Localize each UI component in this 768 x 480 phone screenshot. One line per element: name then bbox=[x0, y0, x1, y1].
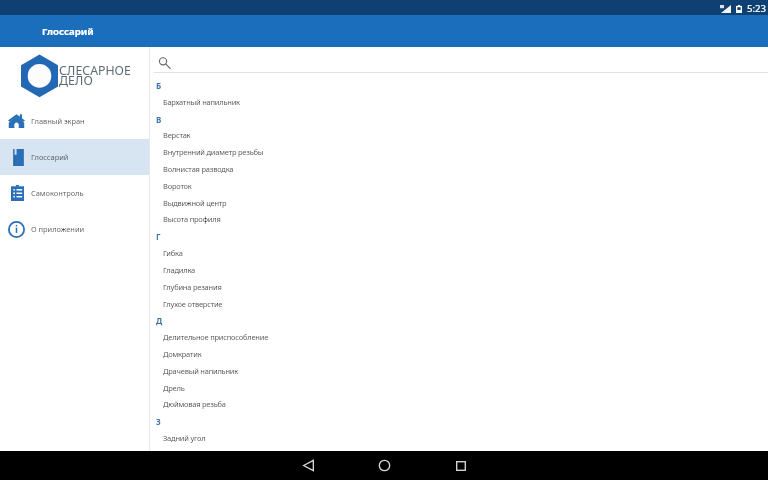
other: Сигнал сети 3G bbox=[720, 5, 731, 13]
button[interactable]: Бархатный напильник bbox=[150, 95, 768, 109]
staticText: Дрель bbox=[163, 383, 185, 393]
staticText: Высота профиля bbox=[163, 214, 221, 224]
button[interactable]: Назад bbox=[292, 451, 324, 480]
staticText: Глоссарий bbox=[42, 25, 94, 38]
staticText: Глубина резания bbox=[163, 282, 222, 292]
button[interactable]: Выдвижной центр bbox=[150, 196, 768, 210]
staticText: Д bbox=[156, 315, 163, 326]
staticText: Выдвижной центр bbox=[163, 198, 227, 208]
staticText: Внутренний диаметр резьбы bbox=[163, 147, 264, 157]
staticText: Верстак bbox=[163, 130, 191, 140]
button[interactable]: Верстак bbox=[150, 128, 768, 142]
button[interactable]: Задний угол bbox=[150, 431, 768, 445]
staticText: Г bbox=[156, 231, 161, 242]
button[interactable]: Поиск bbox=[158, 57, 170, 69]
button[interactable]: Домой bbox=[368, 451, 400, 480]
staticText: Самоконтроль bbox=[31, 188, 84, 198]
staticText: Глухое отверстие bbox=[163, 299, 223, 309]
other: Главный экран bbox=[8, 114, 25, 128]
button[interactable]: О приложении bbox=[0, 211, 149, 247]
button[interactable]: Глоссарий bbox=[0, 139, 149, 175]
staticText: Волнистая разводка bbox=[163, 164, 234, 174]
button[interactable]: Драчевый напильник bbox=[150, 364, 768, 378]
button[interactable]: Внутренний диаметр резьбы bbox=[150, 145, 768, 159]
staticText: В bbox=[156, 114, 162, 125]
button[interactable]: Главный экран bbox=[0, 103, 149, 139]
button[interactable]: Волнистая разводка bbox=[150, 162, 768, 176]
staticText: О приложении bbox=[31, 224, 85, 234]
staticText: Дюймовая резьба bbox=[163, 399, 226, 409]
button[interactable]: Высота профиля bbox=[150, 212, 768, 226]
staticText: СЛЕСАРНОЕ ДЕЛО bbox=[59, 62, 131, 88]
staticText: Б bbox=[156, 80, 162, 91]
other: Самоконтроль bbox=[11, 185, 24, 201]
button[interactable]: Самоконтроль bbox=[0, 175, 149, 211]
staticText: Гибка bbox=[163, 248, 183, 258]
staticText: Задний угол bbox=[163, 433, 206, 443]
button[interactable]: Вороток bbox=[150, 179, 768, 193]
staticText: Главный экран bbox=[31, 116, 85, 126]
staticText: Делительное приспособление bbox=[163, 332, 269, 342]
staticText: Драчевый напильник bbox=[163, 366, 239, 376]
staticText: З bbox=[156, 416, 161, 427]
staticText: Домкратик bbox=[163, 349, 202, 359]
staticText: 5:23 bbox=[747, 2, 767, 15]
button[interactable]: Глоссарий bbox=[0, 15, 106, 47]
button[interactable]: Делительное приспособление bbox=[150, 330, 768, 344]
button[interactable]: Глубина резания bbox=[150, 280, 768, 294]
other: Батарея bbox=[736, 5, 742, 13]
button[interactable]: Дюймовая резьба bbox=[150, 397, 768, 411]
staticText: Гладилка bbox=[163, 265, 196, 275]
button[interactable]: Домкратик bbox=[150, 347, 768, 361]
button[interactable]: Обзор приложений bbox=[445, 451, 477, 480]
staticText: Вороток bbox=[163, 181, 192, 191]
other: О приложении bbox=[8, 221, 25, 238]
other: Глоссарий bbox=[11, 149, 24, 166]
button[interactable]: Дрель bbox=[150, 381, 768, 395]
button[interactable]: Глухое отверстие bbox=[150, 297, 768, 311]
button[interactable]: Гладилка bbox=[150, 263, 768, 277]
staticText: Бархатный напильник bbox=[163, 97, 240, 107]
staticText: Глоссарий bbox=[31, 152, 69, 162]
button[interactable]: Гибка bbox=[150, 246, 768, 260]
